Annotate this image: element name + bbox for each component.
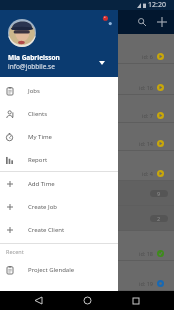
staticText: 9 bbox=[157, 190, 161, 197]
staticText: id: 7 bbox=[142, 112, 153, 119]
staticText: Create Client bbox=[28, 226, 65, 234]
button[interactable]: Recents bbox=[126, 291, 145, 310]
staticText: Mia Gabrielsson bbox=[8, 53, 60, 62]
button[interactable]: id: 18 bbox=[0, 231, 174, 261]
staticText: 2 bbox=[157, 215, 161, 222]
button[interactable]: id: 19 bbox=[0, 261, 174, 291]
button[interactable]: Project Glendale bbox=[0, 258, 118, 281]
button[interactable]: Clients bbox=[0, 102, 118, 125]
button[interactable]: 2 bbox=[0, 206, 174, 231]
staticText: Add Time bbox=[28, 180, 55, 188]
staticText: id: 19 bbox=[139, 280, 153, 287]
button[interactable]: Back bbox=[29, 291, 48, 310]
button[interactable]: Home bbox=[78, 291, 97, 310]
staticText: id: 18 bbox=[139, 250, 153, 257]
staticText: Jobs bbox=[28, 87, 40, 95]
button[interactable]: Create Client bbox=[0, 218, 118, 241]
button[interactable]: id: 7 bbox=[0, 95, 174, 123]
button[interactable]: Add Time bbox=[0, 172, 118, 195]
staticText: Create Job bbox=[28, 203, 57, 211]
staticText: Project Glendale bbox=[28, 266, 75, 274]
staticText: id: 6 bbox=[142, 53, 153, 60]
button[interactable]: Report bbox=[0, 148, 118, 171]
button[interactable]: id: 14 bbox=[0, 123, 174, 151]
button[interactable]: Jobs bbox=[0, 79, 118, 102]
button[interactable]: My Time bbox=[0, 125, 118, 148]
button[interactable]: Search bbox=[132, 10, 152, 34]
button[interactable]: id: 6 bbox=[0, 34, 174, 64]
staticText: id: 16 bbox=[139, 84, 153, 91]
staticText: info@jobbile.se bbox=[8, 62, 55, 71]
staticText: id: 14 bbox=[139, 140, 153, 147]
button[interactable]: id: 16 bbox=[0, 64, 174, 95]
staticText: Recent bbox=[6, 248, 24, 255]
button[interactable]: Create Job bbox=[0, 195, 118, 218]
button[interactable]: id: 4 bbox=[0, 151, 174, 181]
staticText: Clients bbox=[28, 110, 48, 118]
staticText: My Time bbox=[28, 133, 52, 141]
staticText: Report bbox=[28, 156, 48, 164]
button[interactable]: Add bbox=[152, 10, 172, 34]
button[interactable]: 9 bbox=[0, 181, 174, 206]
staticText: 12:20 bbox=[148, 0, 166, 10]
staticText: id: 4 bbox=[142, 170, 153, 177]
